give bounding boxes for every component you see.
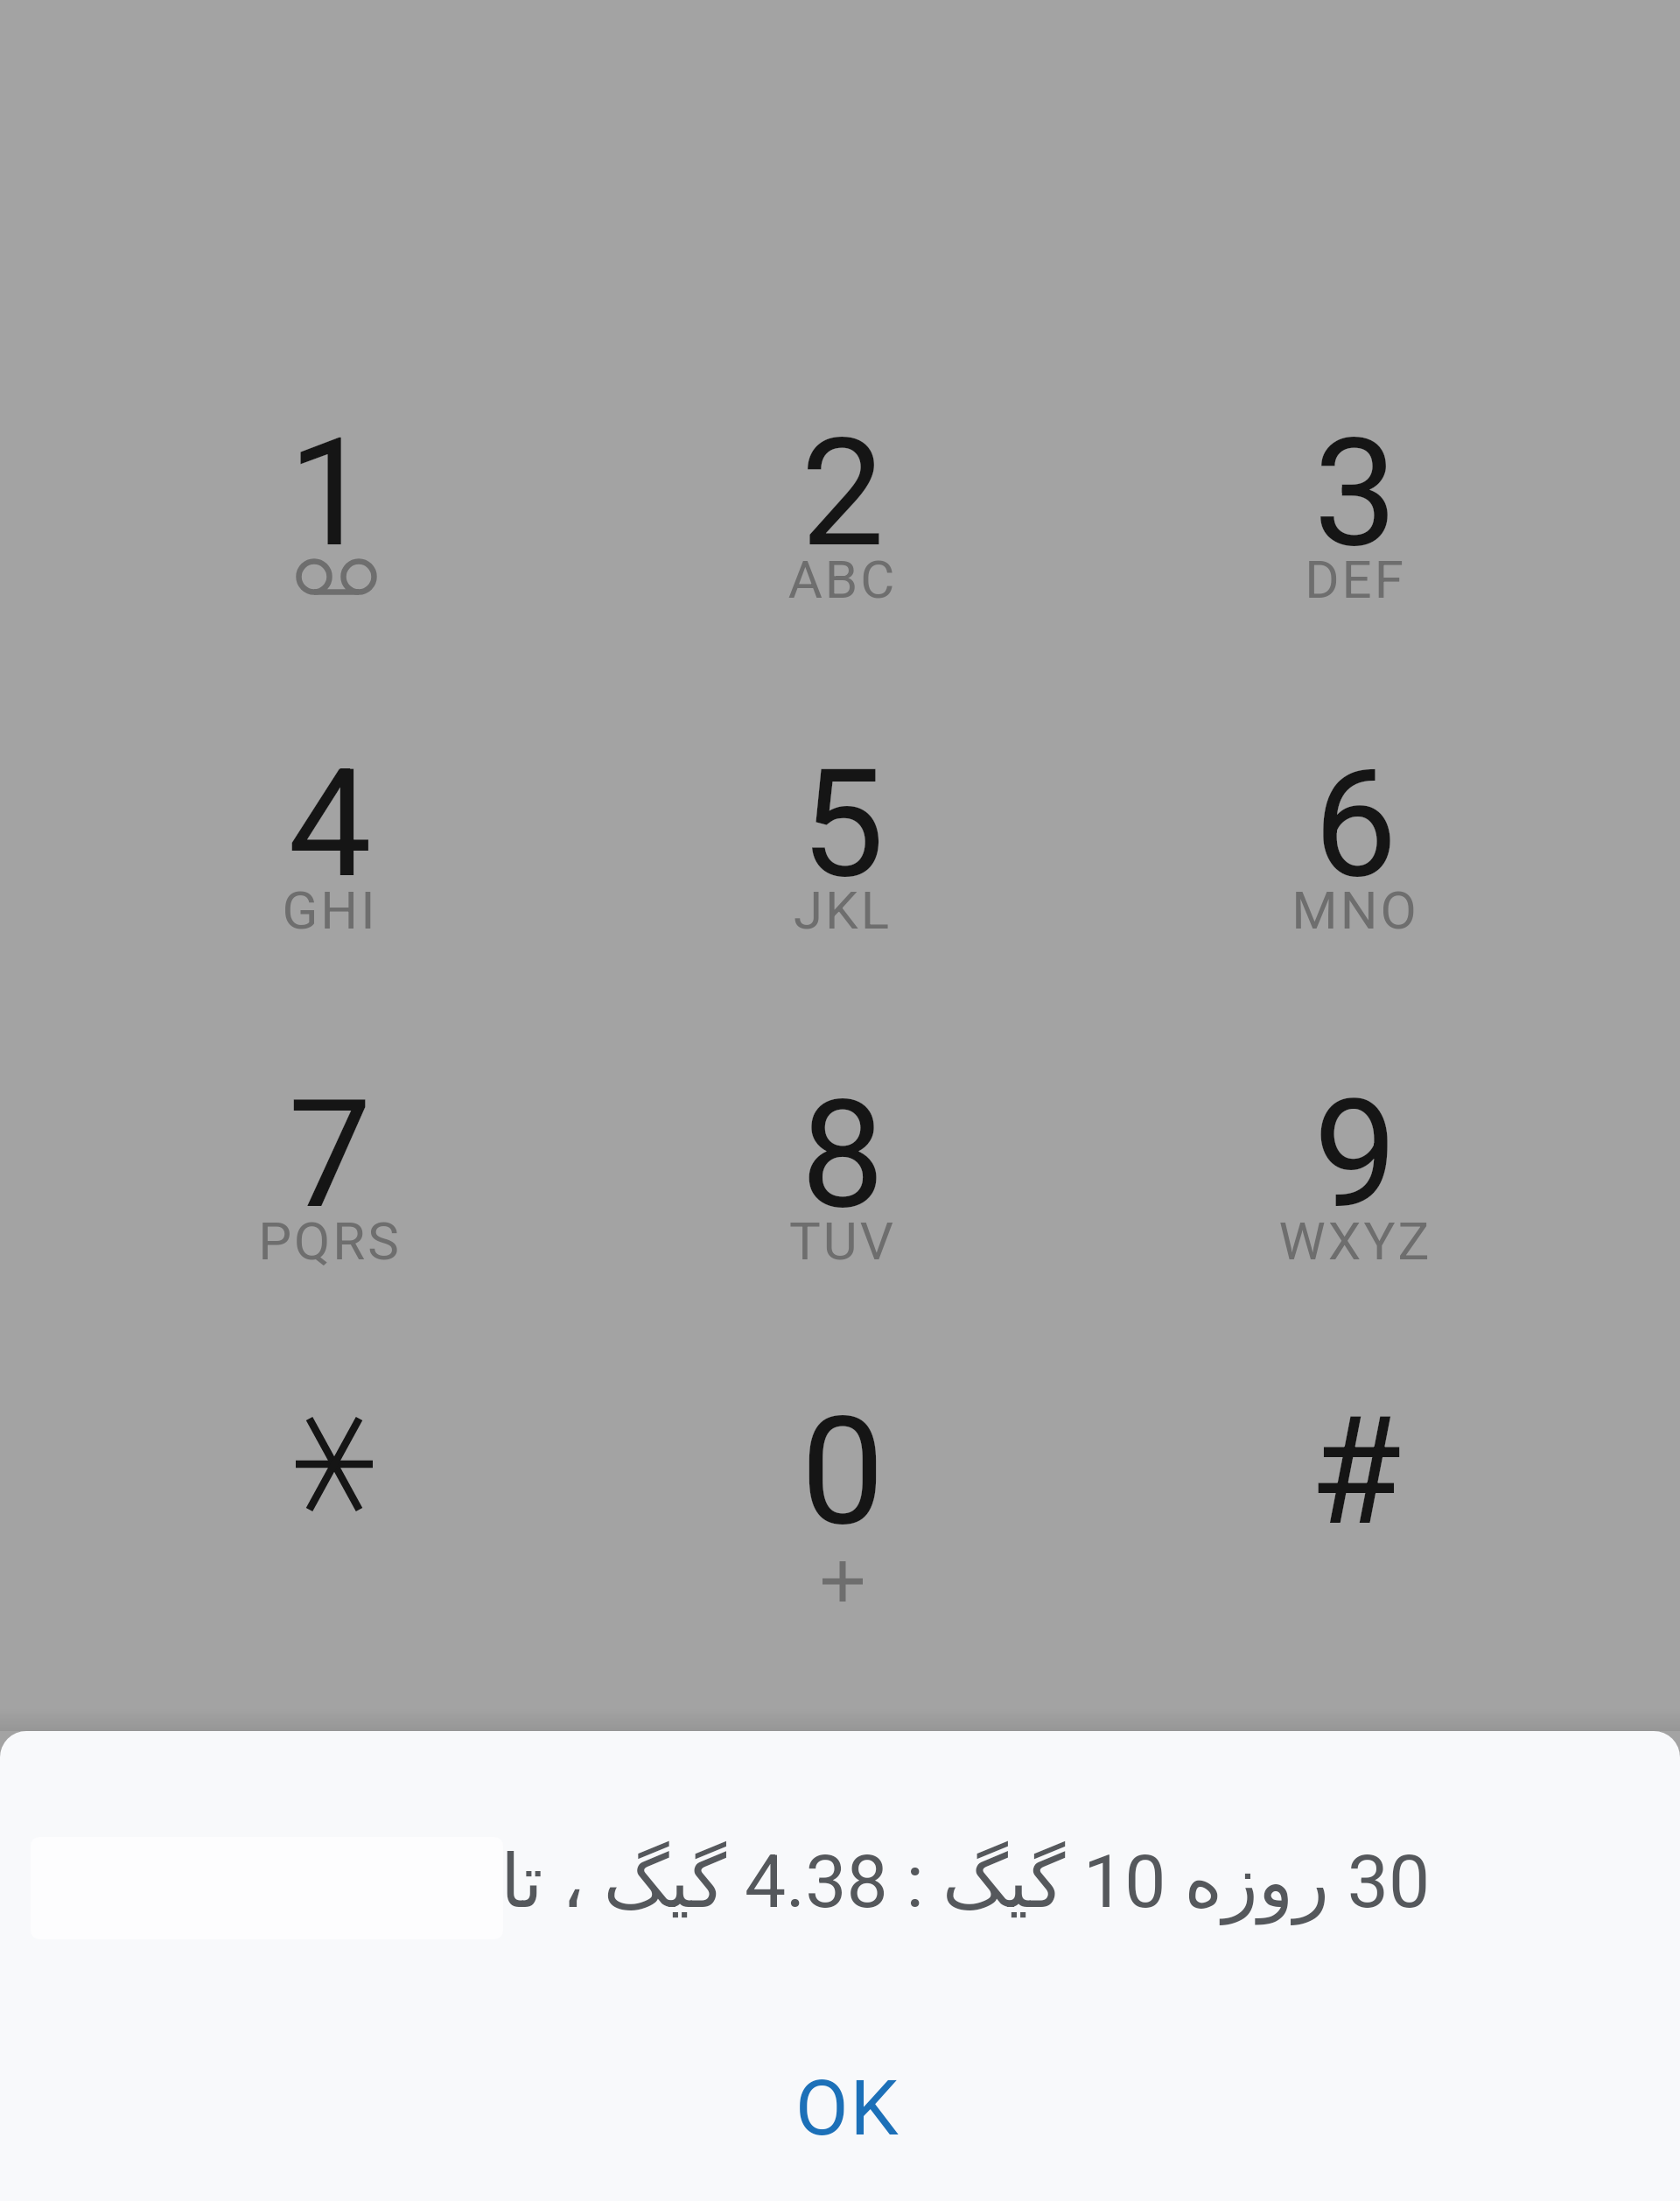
staticText: DEF bbox=[1167, 549, 1543, 610]
staticText: 0 bbox=[654, 1384, 1031, 1559]
button[interactable]: 8 TUV bbox=[654, 1011, 1031, 1308]
staticText: 2 bbox=[654, 406, 1031, 580]
staticText: WXYZ bbox=[1167, 1210, 1543, 1272]
staticText: 1 bbox=[142, 406, 518, 580]
staticText: MNO bbox=[1167, 880, 1543, 941]
staticText: ABC bbox=[654, 549, 1031, 610]
staticText: GHI bbox=[142, 880, 518, 941]
button[interactable]: 7 PQRS bbox=[142, 1011, 518, 1308]
staticText: JKL bbox=[654, 880, 1031, 941]
button[interactable]: 3 DEF bbox=[1167, 349, 1543, 647]
staticText: 3 bbox=[1167, 406, 1543, 580]
staticText: 30 روزه 10 گیگ : 4.38 گیگ ، تا bbox=[125, 1839, 1680, 1924]
button[interactable]: 2 ABC bbox=[654, 349, 1031, 647]
staticText: 5 bbox=[654, 737, 1031, 911]
button[interactable]: 5 JKL bbox=[654, 680, 1031, 978]
button[interactable]: 4 GHI bbox=[142, 680, 518, 978]
staticText: 9 bbox=[1167, 1068, 1543, 1242]
button[interactable]: OK bbox=[743, 2055, 953, 2160]
staticText: # bbox=[1167, 1384, 1543, 1559]
button[interactable]: star bbox=[142, 1328, 518, 1625]
staticText: OK bbox=[795, 2063, 900, 2153]
staticText: TUV bbox=[654, 1210, 1031, 1272]
staticText: 7 bbox=[142, 1068, 518, 1242]
staticText: 8 bbox=[654, 1068, 1031, 1242]
staticText: 6 bbox=[1167, 737, 1543, 911]
button[interactable]: 1 voicemail bbox=[142, 349, 518, 647]
button[interactable]: pound bbox=[1167, 1328, 1543, 1625]
button[interactable]: 9 WXYZ bbox=[1167, 1011, 1543, 1308]
button[interactable]: 0 plus bbox=[654, 1328, 1031, 1625]
button[interactable]: 6 MNO bbox=[1167, 680, 1543, 978]
staticText: 4 bbox=[142, 737, 518, 911]
staticText: PQRS bbox=[142, 1210, 518, 1272]
